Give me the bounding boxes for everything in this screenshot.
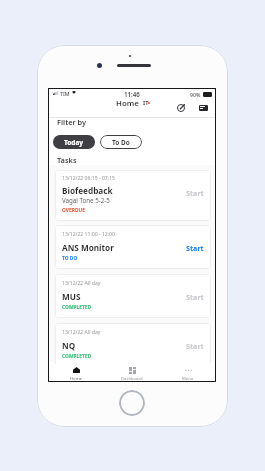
staticText: 13/12/22 All day <box>62 280 101 287</box>
staticText: 11:46 <box>124 90 140 98</box>
staticText: Start <box>186 243 204 253</box>
button[interactable]: 13/12/22 11:00 - 12:00 <box>55 225 211 269</box>
staticText: ANS Monitor <box>62 242 114 253</box>
staticText: Filter by <box>57 117 87 127</box>
staticText: COMPLETED <box>62 353 92 360</box>
staticText: OVERDUE <box>62 207 85 214</box>
button[interactable]: Home <box>48 364 104 382</box>
staticText: Home <box>116 98 139 109</box>
staticText: IT <box>143 99 149 107</box>
button[interactable]: To Do <box>100 135 142 149</box>
button[interactable]: Today <box>53 135 95 149</box>
staticText: 13/12/22 All day <box>62 329 101 336</box>
staticText: 90% <box>190 91 201 98</box>
staticText: Start <box>186 292 204 302</box>
button[interactable]: Dashboard <box>104 364 160 382</box>
staticText: MUS <box>62 291 81 302</box>
staticText: To Do <box>112 138 130 147</box>
staticText: NQ <box>62 340 76 351</box>
staticText: Biofeedback <box>62 185 113 196</box>
staticText: TIM <box>60 90 70 97</box>
staticText: Tasks <box>57 155 77 165</box>
staticText: Dashboard <box>121 376 143 382</box>
staticText: 13/12/22 11:00 - 12:00 <box>62 231 115 238</box>
staticText: Start <box>186 188 204 198</box>
button[interactable]: 13/12/22 06:15 - 07:15 <box>55 170 211 221</box>
button[interactable]: Messages <box>197 99 209 116</box>
staticText: Start <box>186 341 204 351</box>
button[interactable]: 13/12/22 All day <box>55 274 211 318</box>
staticText: Home <box>70 376 82 382</box>
staticText: 13/12/22 06:15 - 07:15 <box>62 175 115 182</box>
staticText: Today <box>64 138 84 147</box>
button[interactable]: Edit profile <box>175 99 187 116</box>
button[interactable]: Menu <box>160 364 216 382</box>
staticText: Menu <box>182 376 194 382</box>
staticText: TO DO <box>62 255 78 262</box>
staticText: COMPLETED <box>62 304 92 311</box>
button[interactable]: 13/12/22 All day <box>55 323 211 367</box>
staticText: Vagal Tone 5-2-5 <box>62 196 110 204</box>
